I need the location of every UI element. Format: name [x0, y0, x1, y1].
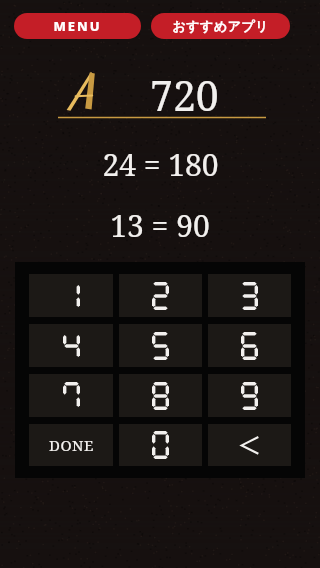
button[interactable] [208, 374, 291, 417]
button[interactable]: DONE [29, 424, 113, 466]
button[interactable] [208, 324, 291, 367]
button[interactable] [29, 274, 113, 317]
button[interactable] [119, 424, 202, 466]
button[interactable] [29, 374, 113, 417]
staticText: DONE [49, 435, 94, 455]
button[interactable]: おすすめアプリ [151, 13, 290, 39]
button[interactable] [208, 274, 291, 317]
button[interactable] [119, 274, 202, 317]
staticText: 13 = 90 [110, 205, 210, 246]
button[interactable]: MENU [14, 13, 141, 39]
staticText: 24 = 180 [102, 144, 219, 185]
button[interactable] [29, 324, 113, 367]
staticText: MENU [53, 17, 102, 35]
button[interactable] [119, 374, 202, 417]
button[interactable]: Backspace [208, 424, 291, 466]
staticText: 720 [150, 67, 219, 123]
staticText: おすすめアプリ [172, 18, 269, 34]
button[interactable] [119, 324, 202, 367]
